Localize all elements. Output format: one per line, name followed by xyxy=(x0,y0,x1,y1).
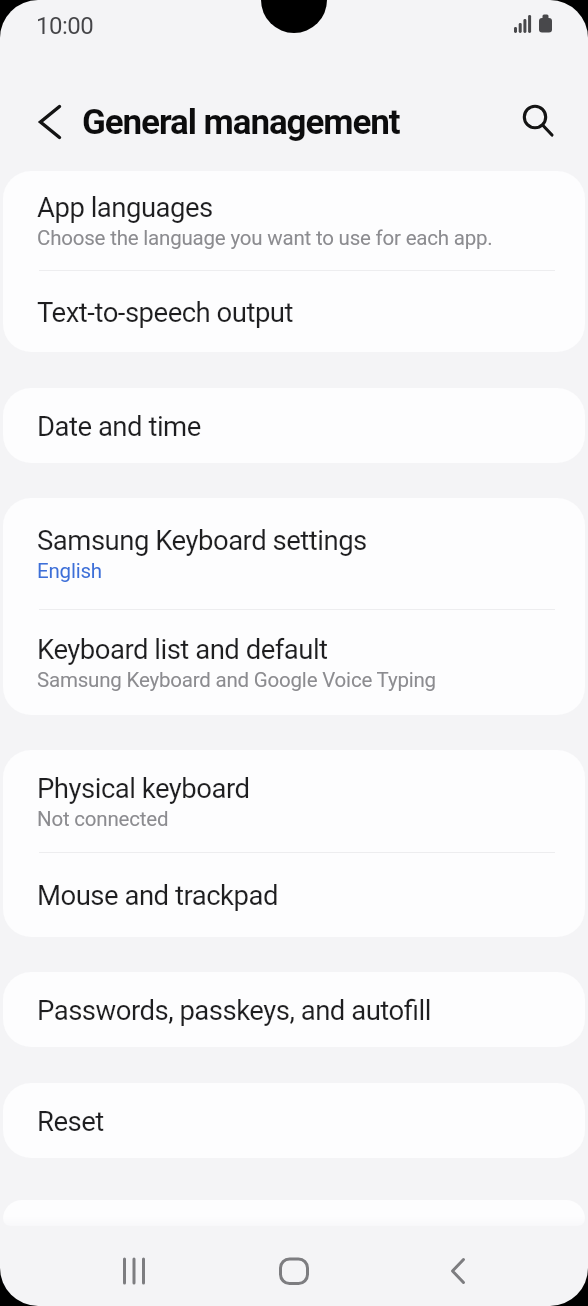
staticText: 10:00 xyxy=(36,12,94,40)
button[interactable] xyxy=(515,98,563,146)
button[interactable] xyxy=(26,98,74,146)
staticText: Text-to-speech output xyxy=(37,296,294,328)
staticText: Physical keyboard xyxy=(37,772,250,804)
staticText: Reset xyxy=(37,1105,104,1137)
staticText: Choose the language you want to use for … xyxy=(37,226,493,250)
button[interactable]: Reset xyxy=(3,1083,585,1158)
staticText: Mouse and trackpad xyxy=(37,879,278,911)
button[interactable]: Keyboard list and default xyxy=(3,610,585,715)
staticText: Samsung Keyboard and Google Voice Typing xyxy=(37,668,436,692)
button[interactable] xyxy=(426,1239,490,1303)
staticText: Date and time xyxy=(37,410,201,442)
button[interactable]: Mouse and trackpad xyxy=(3,853,585,937)
button[interactable]: Physical keyboard xyxy=(3,750,585,852)
button[interactable] xyxy=(102,1239,166,1303)
staticText: Keyboard list and default xyxy=(37,633,328,665)
button[interactable]: Passwords, passkeys, and autofill xyxy=(3,972,585,1047)
button[interactable]: Samsung Keyboard settings xyxy=(3,498,585,609)
button[interactable]: Date and time xyxy=(3,388,585,463)
staticText: Passwords, passkeys, and autofill xyxy=(37,994,431,1026)
button[interactable]: App languages xyxy=(3,171,585,270)
staticText: General management xyxy=(82,102,400,143)
staticText: English xyxy=(37,559,102,583)
button[interactable] xyxy=(262,1239,326,1303)
button[interactable]: Text-to-speech output xyxy=(3,271,585,352)
staticText: Samsung Keyboard settings xyxy=(37,524,367,556)
staticText: App languages xyxy=(37,191,213,223)
staticText: Not connected xyxy=(37,807,169,831)
